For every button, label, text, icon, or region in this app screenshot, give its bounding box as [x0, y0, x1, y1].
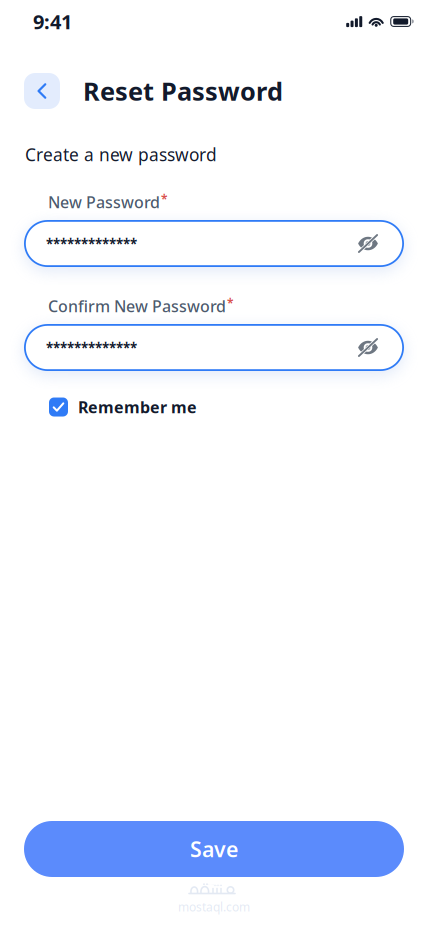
staticText: Confirm New Password: [48, 295, 226, 317]
staticText: New Password: [48, 191, 160, 213]
staticText: Save: [190, 835, 238, 863]
staticText: Create a new password: [25, 143, 217, 166]
button[interactable]: Show password: [346, 324, 390, 370]
staticText: Reset Password: [83, 74, 283, 108]
button[interactable]: Show password: [346, 220, 390, 266]
staticText: 9:41: [33, 8, 72, 35]
staticText: *: [161, 191, 168, 207]
staticText: *************: [46, 235, 137, 252]
staticText: *************: [46, 339, 137, 356]
button[interactable]: Back: [24, 73, 60, 109]
button[interactable]: Save: [24, 821, 404, 877]
button[interactable]: Remember me: [0, 396, 428, 418]
staticText: *: [227, 295, 234, 311]
staticText: mostaql.com: [178, 899, 250, 915]
staticText: Remember me: [78, 396, 197, 418]
